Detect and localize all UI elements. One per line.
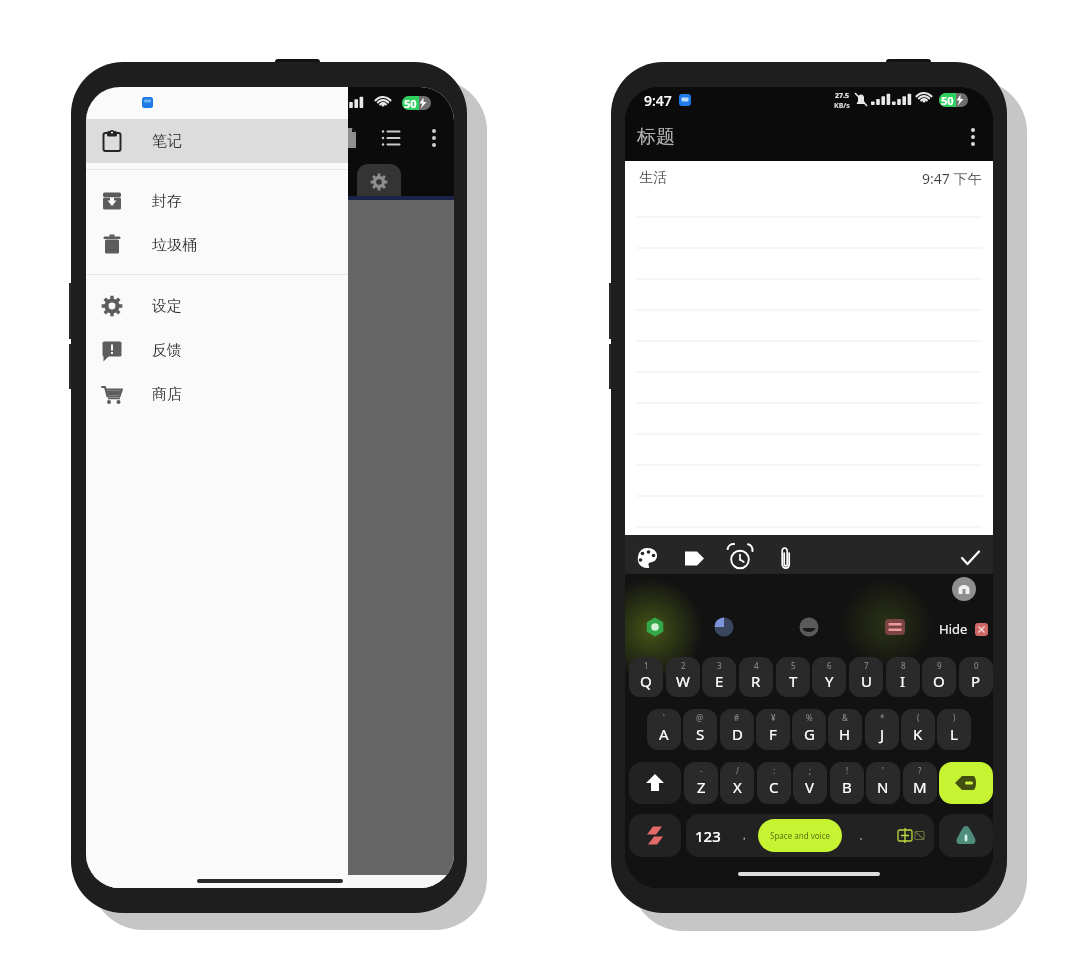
staticText: 8 <box>901 660 906 671</box>
staticText: M <box>913 777 927 797</box>
staticText: 生活 <box>639 169 667 187</box>
button[interactable]: 笔记 <box>86 119 348 163</box>
button[interactable]: ( <box>901 709 935 750</box>
staticText: @ <box>696 712 704 723</box>
button[interactable]: @ <box>683 709 717 750</box>
staticText: A <box>659 724 669 744</box>
button[interactable]: % <box>792 709 826 750</box>
button[interactable]: Color palette <box>625 535 671 574</box>
staticText: Z <box>697 777 706 797</box>
staticText: Y <box>825 671 834 691</box>
button[interactable]: Voice input <box>939 814 993 857</box>
button[interactable]: ? <box>903 762 937 804</box>
staticText: 标题 <box>637 125 675 149</box>
button[interactable]: / <box>720 762 754 804</box>
button[interactable]: ) <box>937 709 971 750</box>
staticText: 9:47 <box>644 91 672 110</box>
staticText: * <box>880 712 885 723</box>
button[interactable]: ¥ <box>756 709 790 750</box>
staticText: ( <box>917 712 920 723</box>
button[interactable]: : <box>757 762 791 804</box>
staticText: 笔记 <box>152 132 182 151</box>
staticText: ; <box>809 765 812 776</box>
button[interactable]: 5 <box>776 657 810 697</box>
button[interactable]: Emoji suggestion <box>791 609 827 645</box>
button[interactable]: 反馈 <box>86 328 348 372</box>
button[interactable]: ' <box>866 762 900 804</box>
button[interactable]: Translate suggestion <box>877 609 913 645</box>
staticText: V <box>805 777 815 797</box>
button[interactable]: Reminder <box>717 535 763 574</box>
button[interactable]: Clock suggestion <box>706 609 742 645</box>
button[interactable]: 0 <box>959 657 993 697</box>
staticText: ' <box>663 712 665 723</box>
button[interactable]: Clipboard suggestion <box>637 609 673 645</box>
button[interactable]: Comma <box>730 814 758 857</box>
staticText: 反馈 <box>152 341 182 360</box>
staticText: N <box>877 777 889 797</box>
staticText: S <box>696 724 705 744</box>
button[interactable]: ! <box>830 762 864 804</box>
staticText: 5 <box>791 660 796 671</box>
button[interactable]: Hide keyboard <box>939 620 988 638</box>
staticText: T <box>789 671 798 691</box>
staticText: B <box>842 777 852 797</box>
staticText: # <box>734 712 740 723</box>
button[interactable]: Shift <box>629 762 681 804</box>
button[interactable]: - <box>684 762 718 804</box>
button[interactable]: 设定 <box>86 284 348 328</box>
staticText: 封存 <box>152 192 182 211</box>
button[interactable]: 123 <box>686 814 730 857</box>
staticText: 50 <box>941 93 954 107</box>
staticText: Hide <box>939 620 968 638</box>
staticText: E <box>715 671 724 691</box>
button[interactable]: 6 <box>812 657 846 697</box>
staticText: ) <box>953 712 956 723</box>
button[interactable]: Switch language <box>884 814 934 857</box>
staticText: K <box>913 724 923 744</box>
button[interactable]: ; <box>793 762 827 804</box>
staticText: Q <box>640 671 652 691</box>
staticText: ' <box>882 765 884 776</box>
staticText: L <box>950 724 958 744</box>
staticText: - <box>700 765 703 776</box>
button[interactable]: Assistant <box>952 577 976 601</box>
button[interactable]: 4 <box>739 657 773 697</box>
staticText: I <box>900 671 906 691</box>
button[interactable]: Period <box>842 814 884 857</box>
button[interactable]: Emoji <box>629 814 681 857</box>
staticText: R <box>751 671 761 691</box>
staticText: X <box>733 777 742 797</box>
button[interactable]: Space and voice <box>758 819 842 852</box>
staticText: 4 <box>754 660 759 671</box>
button[interactable]: 3 <box>702 657 736 697</box>
staticText: 1 <box>644 660 649 671</box>
button[interactable]: 1 <box>629 657 663 697</box>
button[interactable]: 8 <box>886 657 920 697</box>
staticText: % <box>806 712 813 723</box>
button[interactable]: 9 <box>922 657 956 697</box>
button[interactable]: 封存 <box>86 179 348 223</box>
button[interactable]: 7 <box>849 657 883 697</box>
button[interactable]: Done <box>947 535 993 574</box>
staticText: F <box>769 724 777 744</box>
button[interactable]: 商店 <box>86 372 348 416</box>
staticText: U <box>861 671 872 691</box>
button[interactable]: Settings tab <box>357 164 401 198</box>
button[interactable]: # <box>720 709 754 750</box>
staticText: 设定 <box>152 297 182 316</box>
button[interactable]: 垃圾桶 <box>86 223 348 267</box>
button[interactable]: Attach <box>763 535 809 574</box>
staticText: 商店 <box>152 385 182 404</box>
button[interactable]: 2 <box>666 657 700 697</box>
staticText: ! <box>846 765 849 776</box>
button[interactable]: & <box>828 709 862 750</box>
staticText: Space and voice <box>770 830 830 841</box>
button[interactable]: More options <box>949 115 993 159</box>
button[interactable]: Tag <box>671 535 717 574</box>
button[interactable]: Backspace <box>939 762 993 804</box>
staticText: H <box>839 724 851 744</box>
button[interactable]: ' <box>647 709 681 750</box>
button[interactable]: * <box>865 709 899 750</box>
staticText: W <box>676 671 690 691</box>
